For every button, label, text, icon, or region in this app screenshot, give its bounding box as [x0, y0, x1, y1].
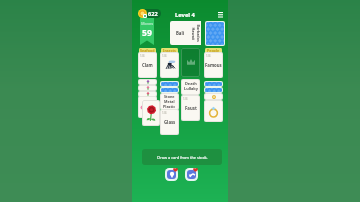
button[interactable]: [138, 85, 157, 91]
button[interactable]: [138, 91, 157, 97]
staticText: Plastic: [163, 104, 176, 109]
button[interactable]: Undo: [185, 168, 198, 181]
button[interactable]: [204, 93, 223, 100]
button[interactable]: Insects: [161, 48, 178, 53]
button[interactable]: [204, 100, 223, 122]
staticText: 1/4: [162, 54, 167, 58]
staticText: Death: [185, 81, 197, 86]
button[interactable]: Stone: [160, 93, 179, 110]
button[interactable]: [142, 100, 160, 126]
button[interactable]: 1/4: [138, 52, 157, 78]
button[interactable]: 1/4: [160, 109, 179, 135]
button[interactable]: Barbados: [195, 21, 201, 45]
staticText: 1/4: [162, 111, 167, 115]
staticText: Insects: [163, 48, 176, 53]
staticText: Barbados: [195, 24, 200, 42]
staticText: 622: [148, 10, 158, 18]
staticText: Level 4: [175, 11, 195, 19]
staticText: Metal: [164, 99, 175, 104]
staticText: Draw a card from the stock.: [157, 155, 208, 160]
button[interactable]: Hint: [165, 168, 178, 181]
staticText: Faust: [185, 105, 197, 111]
staticText: 1/4: [183, 97, 188, 101]
staticText: Lullaby: [184, 86, 198, 91]
staticText: Glass: [164, 119, 176, 125]
staticText: Stone: [164, 94, 175, 99]
button[interactable]: 622: [139, 9, 161, 18]
button[interactable]: Menu: [215, 9, 226, 20]
button[interactable]: [160, 81, 179, 87]
staticText: 1/4: [206, 54, 211, 58]
button[interactable]: Hawaii: [190, 21, 195, 45]
button[interactable]: 1/4: [181, 95, 200, 121]
button[interactable]: People: [205, 48, 222, 53]
staticText: Famous: [205, 62, 222, 68]
button[interactable]: [138, 96, 157, 118]
staticText: People: [207, 48, 220, 53]
button[interactable]: [181, 48, 200, 77]
button[interactable]: [138, 79, 157, 85]
staticText: Seafood: [140, 48, 155, 53]
staticText: Moves: [141, 21, 154, 26]
button[interactable]: [160, 87, 179, 93]
staticText: 59: [142, 27, 152, 39]
staticText: 1/4: [140, 54, 145, 58]
button[interactable]: [205, 21, 225, 46]
staticText: Hawaii: [190, 27, 195, 40]
button[interactable]: [204, 87, 223, 93]
button[interactable]: Draw a card from the stock.: [142, 149, 222, 165]
button[interactable]: [204, 81, 223, 87]
button[interactable]: 1/4: [160, 52, 179, 78]
button[interactable]: Death: [181, 79, 200, 95]
button[interactable]: Bali: [170, 21, 190, 45]
staticText: Clam: [142, 62, 153, 68]
button[interactable]: Seafood: [139, 48, 156, 53]
button[interactable]: 1/4: [204, 52, 223, 78]
staticText: Bali: [176, 30, 184, 36]
